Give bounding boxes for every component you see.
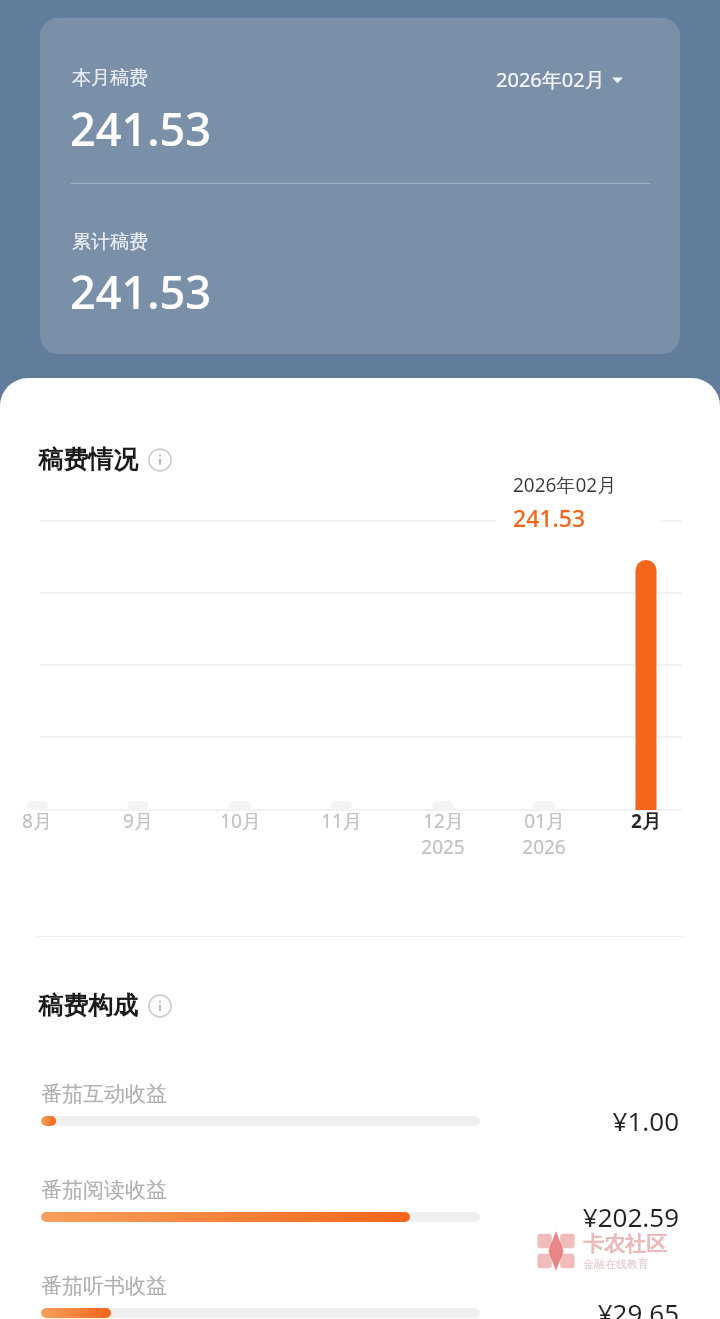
other: 关于稿费构成 (148, 994, 172, 1018)
staticText: 241.53 (70, 261, 211, 322)
staticText: 2026年02月 (513, 472, 617, 498)
button[interactable]: 稿费构成 (38, 990, 172, 1021)
staticText: 241.53 (513, 502, 586, 533)
staticText: 番茄阅读收益 (41, 1177, 167, 1203)
staticText: 番茄互动收益 (41, 1081, 167, 1107)
button[interactable]: 2026年02月 (496, 66, 623, 93)
staticText: 2月 (631, 808, 661, 834)
staticText: 2026年02月 (496, 66, 605, 93)
staticText: ¥29.65 (380, 1295, 679, 1319)
button[interactable]: 番茄听书收益 (0, 1270, 720, 1319)
staticText: 9月 (123, 808, 153, 834)
staticText: 11月 (321, 808, 362, 834)
staticText: 2026 (522, 834, 566, 860)
staticText: 10月 (220, 808, 261, 834)
staticText: ¥1.00 (380, 1103, 679, 1138)
staticText: 241.53 (70, 98, 211, 159)
staticText: 12月 (423, 808, 464, 834)
other: 关于稿费情况 (148, 448, 172, 472)
button[interactable]: 番茄阅读收益 (0, 1174, 720, 1264)
staticText: 金融在线教育 (583, 1257, 649, 1271)
staticText: 本月稿费 (72, 66, 148, 90)
staticText: 番茄听书收益 (41, 1273, 167, 1299)
button[interactable]: 番茄互动收益 (0, 1078, 720, 1168)
button[interactable]: 稿费情况 (38, 444, 172, 475)
staticText: 01月 (524, 808, 565, 834)
staticText: 卡农社区 (583, 1231, 667, 1257)
staticText: 稿费构成 (38, 990, 138, 1021)
staticText: 稿费情况 (38, 444, 138, 475)
staticText: 累计稿费 (72, 230, 148, 254)
staticText: 2025 (421, 834, 465, 860)
staticText: 8月 (22, 808, 52, 834)
button[interactable]: 本月稿费 (40, 18, 680, 354)
staticText: ¥202.59 (380, 1199, 679, 1234)
